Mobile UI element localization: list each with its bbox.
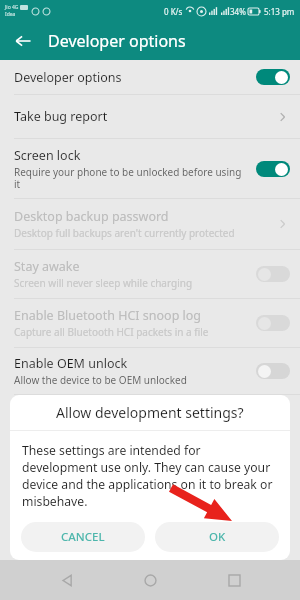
staticText: Screen lock <box>14 147 81 164</box>
staticText: 5:13 pm <box>264 6 295 17</box>
button[interactable]: Stay awake <box>0 250 300 298</box>
staticText: Idea <box>5 11 16 18</box>
staticText: Stay awake <box>14 258 80 275</box>
button[interactable]: Take bug report <box>0 95 300 138</box>
button[interactable]: Enable OEM unlock <box>0 348 300 394</box>
button[interactable]: Toggle <box>256 315 290 331</box>
button[interactable]: Back <box>50 563 84 597</box>
button[interactable]: OK <box>155 522 279 552</box>
button[interactable]: Screen lock <box>0 139 300 198</box>
staticText: Desktop backup password <box>14 208 169 225</box>
button[interactable]: Toggle <box>256 161 290 177</box>
button[interactable]: Toggle <box>256 69 290 85</box>
staticText: OK <box>209 529 226 545</box>
staticText: Developer options <box>14 69 122 86</box>
staticText: Require your phone to be unlocked before… <box>14 165 248 191</box>
staticText: Allow development settings? <box>56 403 244 422</box>
staticText: Allow the device to be OEM unlocked <box>14 373 187 387</box>
staticText: Desktop full backups aren't currently pr… <box>14 226 235 240</box>
staticText: 34% <box>230 6 246 17</box>
button[interactable]: Enable Bluetooth HCI snoop log <box>0 299 300 347</box>
button[interactable]: Recent apps <box>217 563 251 597</box>
staticText: CANCEL <box>61 529 105 545</box>
staticText: Screen will never sleep while charging <box>14 276 193 290</box>
button[interactable]: Toggle <box>256 266 290 282</box>
staticText: Take bug report <box>14 108 108 125</box>
button[interactable]: Desktop backup password <box>0 199 300 249</box>
button[interactable]: Back <box>10 28 36 54</box>
staticText: Enable Bluetooth HCI snoop log <box>14 307 202 324</box>
button[interactable]: CANCEL <box>21 522 145 552</box>
button[interactable]: Toggle <box>256 363 290 379</box>
staticText: 0 K/s <box>164 6 183 17</box>
staticText: Developer options <box>48 30 186 52</box>
staticText: These settings are intended for developm… <box>22 442 278 510</box>
staticText: Enable OEM unlock <box>14 355 128 372</box>
button[interactable]: Home <box>133 563 167 597</box>
staticText: Jio 4G <box>5 4 19 11</box>
button[interactable]: Developer options <box>0 60 300 94</box>
staticText: Capture all Bluetooth HCI packets in a f… <box>14 325 209 339</box>
